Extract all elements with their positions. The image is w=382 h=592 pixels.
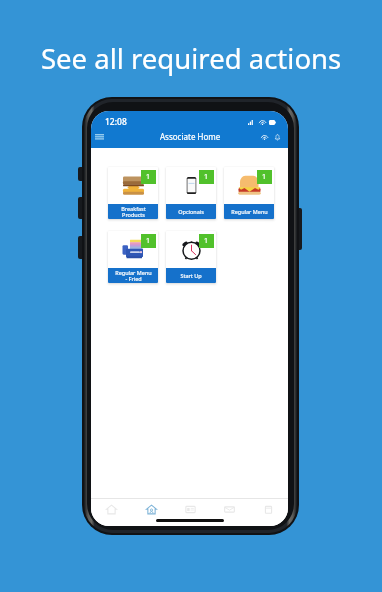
button[interactable]: Wi-Fi (259, 131, 270, 142)
staticText: Start Up (180, 272, 202, 279)
staticText: 1 (146, 172, 151, 182)
staticText: 1 (262, 172, 267, 182)
button[interactable]: Messages (210, 500, 249, 518)
button[interactable]: Start Up (166, 231, 216, 283)
staticText: See all required actions (41, 40, 342, 77)
button[interactable]: Menu (92, 129, 106, 143)
staticText: Breakfast Products (121, 205, 146, 219)
button[interactable]: Breakfast Products (108, 167, 158, 219)
staticText: Regular Menu (231, 208, 268, 215)
button[interactable]: Orders (171, 500, 210, 518)
button[interactable]: Regular Menu - Fried (108, 231, 158, 283)
staticText: Associate Home (160, 131, 221, 142)
staticText: Opcionais (178, 208, 204, 215)
button[interactable]: Dashboard (131, 500, 171, 518)
button[interactable]: Notifications (272, 131, 283, 142)
staticText: 1 (204, 236, 209, 246)
button[interactable]: Home (91, 500, 131, 518)
button[interactable]: Opcionais (166, 167, 216, 219)
staticText: Regular Menu - Fried (115, 269, 152, 283)
staticText: 1 (146, 236, 151, 246)
staticText: 12:08 (105, 116, 127, 128)
staticText: 1 (204, 172, 209, 182)
button[interactable]: Regular Menu (224, 167, 274, 219)
button[interactable]: More (249, 500, 288, 518)
